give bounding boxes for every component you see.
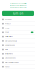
staticText: Starred messages [5, 61, 19, 63]
button[interactable]: About [0, 65, 36, 69]
button[interactable]: Notifications [0, 35, 36, 39]
button[interactable]: Turn on [2, 11, 34, 16]
staticText: Account [5, 18, 11, 20]
staticText: an extra layer of security [9, 7, 26, 8]
staticText: Invite a friend [5, 53, 13, 55]
staticText: two-step verification to add [9, 5, 26, 6]
button[interactable]: Storage and data [0, 39, 36, 43]
staticText: Turn on [12, 12, 23, 15]
button[interactable]: Starred messages [0, 60, 36, 65]
button[interactable]: Linked devices [0, 56, 36, 60]
staticText: Chats [5, 31, 9, 33]
staticText: Protect your account with [9, 3, 26, 4]
button[interactable]: Invite a friend [0, 52, 36, 56]
button[interactable]: Chats [0, 30, 36, 35]
staticText: Linked devices [5, 57, 16, 59]
button[interactable]: Account [0, 17, 36, 22]
button[interactable]: Privacy [0, 22, 36, 26]
staticText: Privacy [5, 23, 11, 25]
staticText: Help [5, 49, 8, 50]
staticText: App language [5, 44, 15, 46]
staticText: Notifications [5, 36, 13, 37]
staticText: Storage and data [5, 40, 17, 42]
staticText: Avatar [5, 27, 10, 29]
staticText: About [5, 66, 9, 68]
button[interactable]: Avatar [0, 26, 36, 30]
button[interactable]: Help [0, 47, 36, 52]
button[interactable]: App language [0, 43, 36, 47]
